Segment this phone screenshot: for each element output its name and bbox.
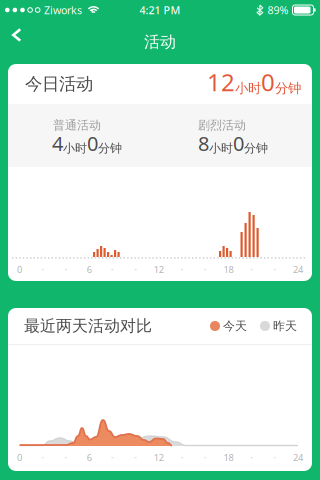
staticText: 0 [17,451,22,464]
staticText: 0 [17,263,22,276]
staticText: 活动 [144,32,176,52]
button[interactable] [0,20,21,64]
staticText: 剧烈活动 [198,118,246,133]
staticText: 最近两天活动对比 [24,316,152,336]
staticText: 今天 [223,319,247,333]
staticText: 6 [87,263,92,276]
staticText: 18 [223,263,233,276]
staticText: 18 [223,451,233,464]
staticText: 12 [154,263,164,276]
staticText: 89% [267,3,288,17]
staticText: 4:21 PM [139,3,180,17]
staticText: 24 [293,263,303,276]
staticText: Ziworks [44,3,82,17]
staticText: 昨天 [273,319,297,333]
staticText: 12 [154,451,164,464]
staticText: 8小时0分钟 [198,130,268,157]
staticText: 12小时0分钟 [207,66,301,98]
staticText: 4小时0分钟 [52,130,122,157]
staticText: 6 [87,451,92,464]
staticText: 普通活动 [53,118,101,133]
staticText: 今日活动 [25,73,93,95]
staticText: 24 [293,451,303,464]
